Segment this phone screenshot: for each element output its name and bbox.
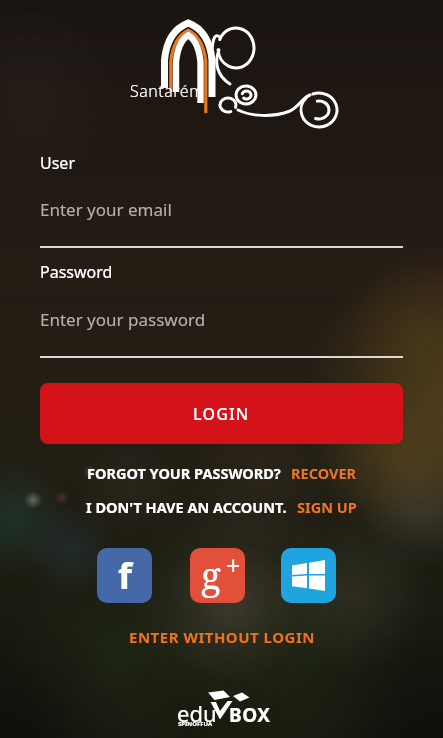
button[interactable]: ENTER WITHOUT LOGIN — [129, 627, 315, 647]
staticText: SPINOFFUA — [178, 720, 213, 728]
staticText: edu — [177, 698, 217, 728]
button[interactable]: SIGN UP — [297, 497, 357, 517]
staticText: I DON'T HAVE AN ACCOUNT. — [86, 497, 287, 517]
button[interactable]: RECOVER — [291, 463, 357, 483]
staticText: Password — [40, 261, 113, 283]
staticText: User — [40, 152, 75, 174]
staticText: f — [118, 551, 132, 600]
staticText: Enter your email — [40, 198, 172, 221]
staticText: LOGIN — [193, 403, 250, 425]
button[interactable]: g — [190, 548, 245, 603]
staticText: Enter your password — [40, 308, 206, 331]
button[interactable]: LOGIN — [40, 383, 403, 444]
staticText: g — [201, 549, 221, 599]
staticText: Santarém — [130, 80, 204, 102]
staticText: + — [226, 548, 241, 582]
staticText: FORGOT YOUR PASSWORD? — [87, 463, 281, 483]
button[interactable]: f — [97, 548, 152, 603]
button[interactable] — [281, 548, 336, 603]
staticText: BOX — [229, 702, 271, 728]
